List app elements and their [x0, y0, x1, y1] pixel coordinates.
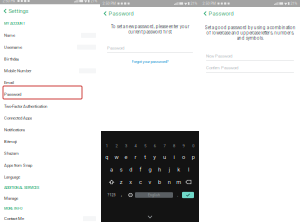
staticText: Name [4, 33, 15, 38]
button[interactable]: Connected Apps [0, 112, 100, 124]
staticText: To set a new password, please enter your… [110, 24, 189, 35]
staticText: 21% [290, 1, 297, 6]
button[interactable]: x [126, 177, 136, 186]
staticText: l [188, 166, 189, 173]
button[interactable]: 8 [169, 143, 179, 149]
button[interactable]: Password [100, 7, 137, 20]
staticText: Password [209, 10, 234, 17]
staticText: p [192, 154, 195, 160]
button[interactable]: Bitmoji [0, 136, 100, 147]
button[interactable]: . [173, 190, 182, 199]
button[interactable]: Contact Me [0, 213, 100, 222]
button[interactable]: v [145, 177, 155, 186]
button[interactable]: n [164, 177, 174, 186]
button[interactable]: d [126, 165, 136, 174]
staticText: Language [4, 174, 20, 179]
staticText: English [148, 193, 160, 197]
button[interactable]: Shazam [0, 147, 100, 159]
button[interactable]: r [131, 152, 140, 161]
button[interactable]: Two-Factor Authentication [0, 100, 100, 112]
button[interactable]: y [150, 152, 160, 161]
button[interactable]: 3 [121, 143, 131, 149]
button[interactable]: i [169, 152, 179, 161]
button[interactable]: w [112, 152, 121, 161]
button[interactable]: q [102, 152, 112, 161]
staticText: b [158, 179, 161, 185]
button[interactable]: t [140, 152, 150, 161]
button[interactable]: Apps from Snap [0, 159, 100, 171]
button[interactable]: 9 [179, 143, 188, 149]
button[interactable]: Name [0, 29, 100, 41]
button[interactable]: Email [0, 77, 100, 88]
staticText: w [114, 154, 118, 160]
button[interactable]: s [116, 165, 126, 174]
staticText: MY ACCOUNT [4, 21, 25, 26]
button[interactable]: z [116, 177, 126, 186]
button[interactable]: c [136, 177, 145, 186]
staticText: 21% [190, 1, 197, 6]
button[interactable]: e [121, 152, 131, 161]
button[interactable]: Password [107, 46, 193, 53]
button[interactable]: Notifications [0, 124, 100, 136]
staticText: Notifications [4, 127, 25, 132]
button[interactable]: 0 [188, 143, 198, 149]
staticText: 2:50 PM [102, 1, 115, 6]
staticText: d [129, 166, 132, 173]
button[interactable]: Password [0, 88, 100, 100]
staticText: o [182, 154, 185, 160]
button[interactable]: Done [182, 192, 194, 198]
button[interactable]: p [188, 152, 198, 161]
button[interactable]: j [164, 165, 174, 174]
button[interactable]: , [117, 190, 126, 199]
staticText: q [105, 154, 108, 160]
button[interactable]: Manage [0, 192, 100, 204]
button[interactable]: o [179, 152, 188, 161]
button[interactable]: u [160, 152, 169, 161]
button[interactable]: f [136, 165, 145, 174]
button[interactable]: 5 [140, 143, 150, 149]
staticText: k [177, 166, 180, 173]
staticText: 4 [135, 144, 137, 148]
staticText: z [120, 179, 123, 185]
button[interactable]: Mobile Number [0, 65, 100, 77]
button[interactable]: a [107, 165, 116, 174]
button[interactable]: b [155, 177, 164, 186]
button[interactable]: 2 [112, 143, 121, 149]
button[interactable]: m [174, 177, 184, 186]
staticText: a [110, 166, 113, 173]
button[interactable]: l [184, 165, 193, 174]
button[interactable]: Birthday [0, 53, 100, 65]
button[interactable]: h [155, 165, 164, 174]
staticText: v [148, 179, 151, 185]
button[interactable]: New Password [206, 53, 294, 61]
staticText: n [168, 179, 171, 185]
button[interactable]: ?123 [106, 190, 117, 199]
button[interactable]: Delete [184, 177, 193, 186]
staticText: r [135, 154, 137, 160]
button[interactable]: k [174, 165, 184, 174]
button[interactable]: Shift [107, 177, 116, 186]
button[interactable]: Confirm Password [206, 65, 294, 73]
staticText: Password [109, 10, 134, 17]
button[interactable]: Username [0, 41, 100, 53]
button[interactable]: 7 [160, 143, 169, 149]
button[interactable]: Forgot your password? [131, 53, 168, 68]
staticText: Shazam [4, 151, 19, 156]
staticText: Set a good password by using a combinati… [204, 25, 295, 41]
staticText: y [153, 154, 156, 160]
staticText: Confirm Password [206, 65, 238, 70]
button[interactable]: Password [200, 7, 237, 20]
staticText: New Password [206, 53, 232, 58]
button[interactable]: Language [0, 171, 100, 183]
button[interactable]: Space [135, 192, 173, 198]
button[interactable]: Switch keyboard [126, 190, 135, 199]
staticText: 2:50 PM [202, 1, 215, 6]
button[interactable]: 1 [102, 143, 112, 149]
button[interactable]: 6 [150, 143, 160, 149]
staticText: Password [4, 92, 21, 97]
staticText: 1 [106, 144, 108, 148]
staticText: 8 [173, 144, 175, 148]
button[interactable]: 4 [131, 143, 140, 149]
button[interactable]: Settings [0, 4, 32, 17]
button[interactable]: g [145, 165, 155, 174]
